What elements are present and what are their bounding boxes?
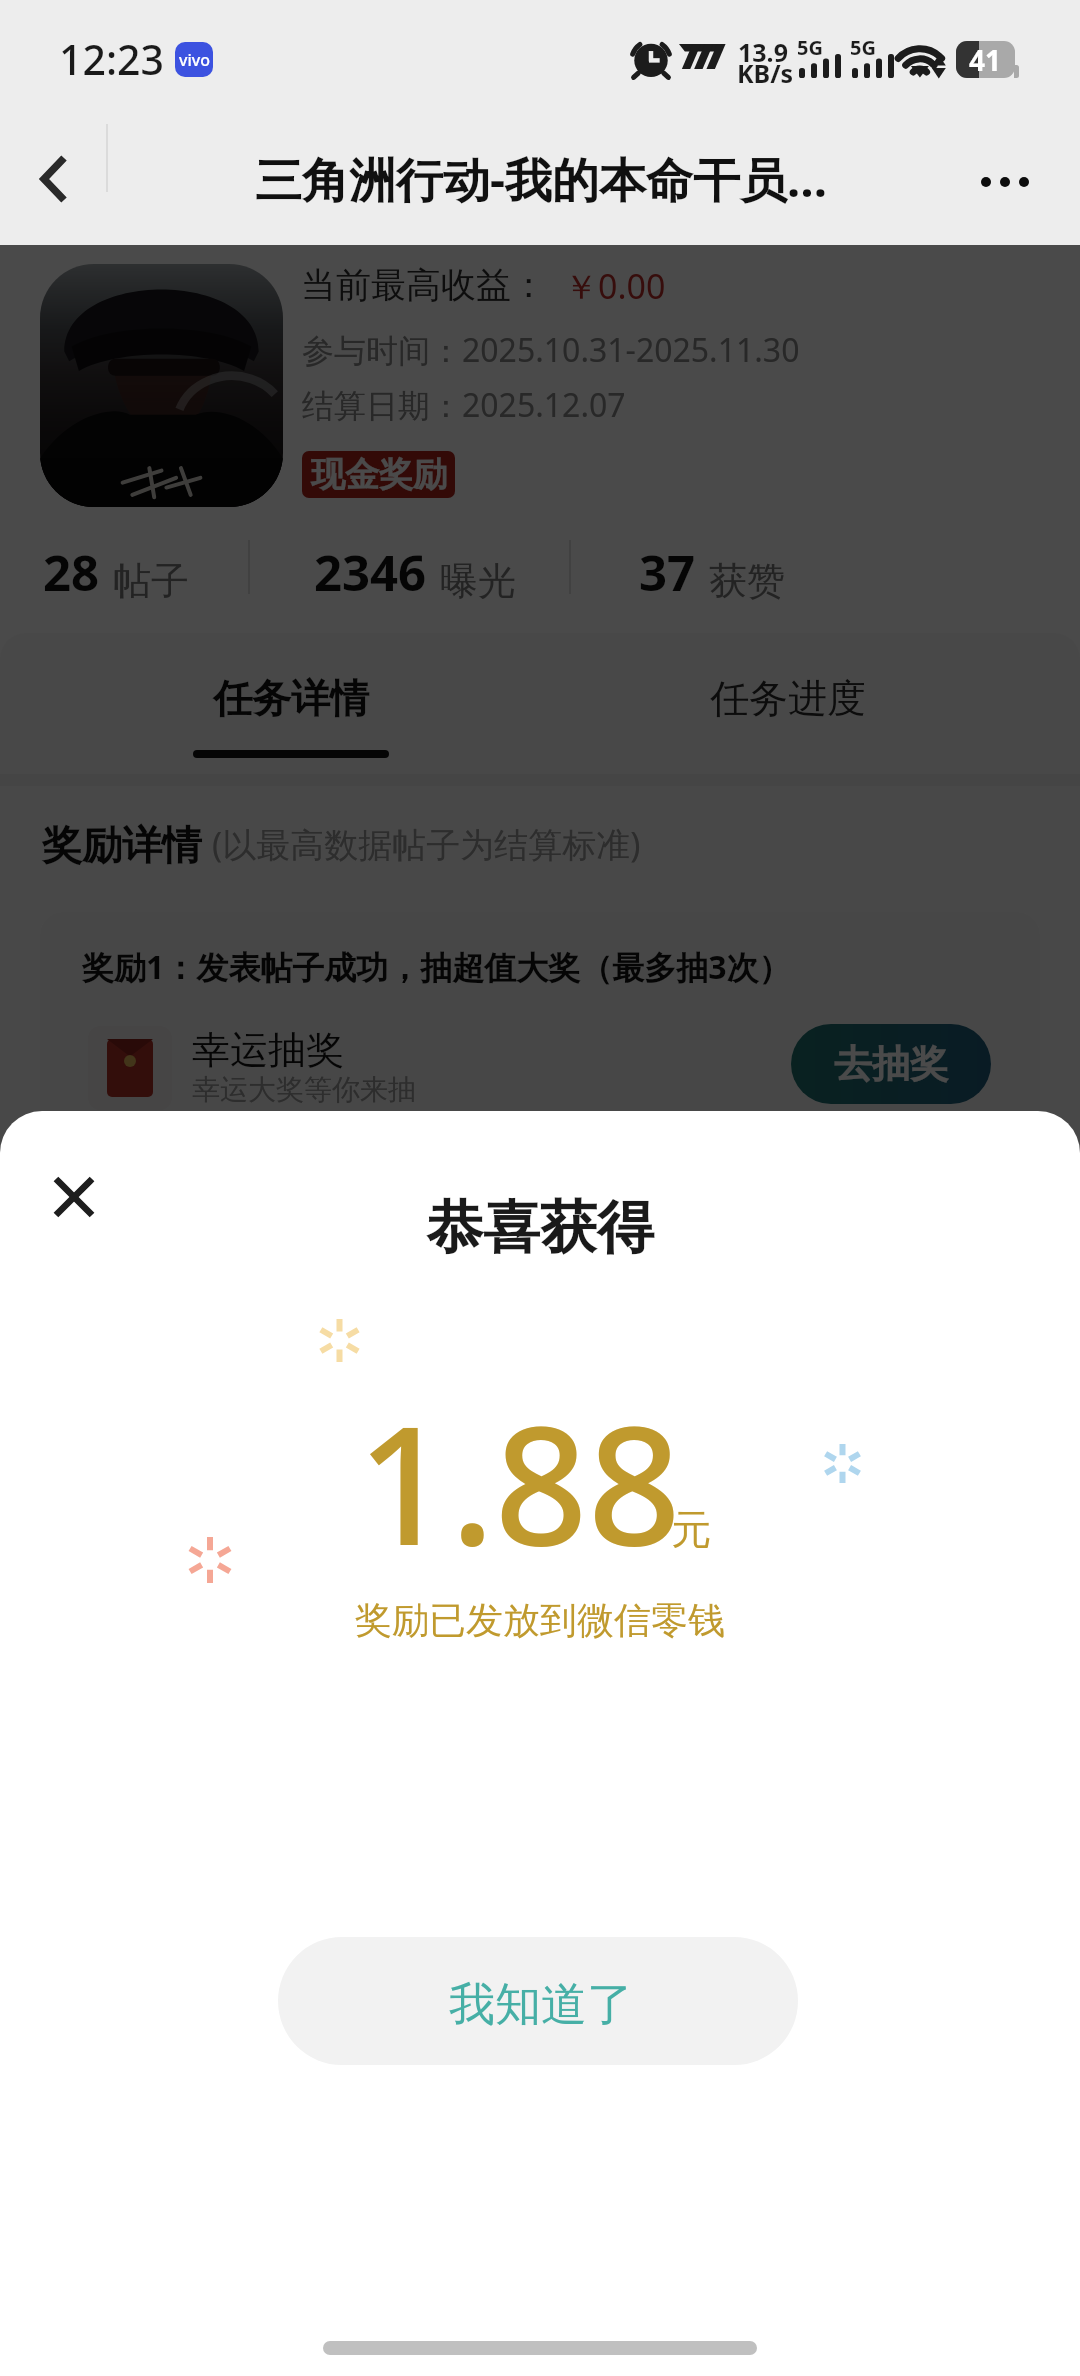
staticText: (以最高数据帖子为结算标准) bbox=[212, 821, 641, 867]
staticText: 奖励1：发表帖子成功，抽超值大奖（最多抽3次） bbox=[82, 945, 791, 989]
staticText: 现金奖励 bbox=[311, 453, 447, 496]
staticText: 当前最高收益： bbox=[301, 263, 546, 307]
staticText: ￥0.00 bbox=[564, 263, 666, 309]
staticText: 28 bbox=[43, 539, 100, 606]
staticText: 5G bbox=[850, 34, 876, 61]
button[interactable]: 我知道了 bbox=[278, 1937, 798, 2065]
staticText: 12:23 bbox=[59, 31, 164, 87]
staticText: 13.9 bbox=[738, 35, 788, 69]
staticText: 37 bbox=[639, 539, 696, 606]
button[interactable]: Back bbox=[0, 112, 106, 245]
staticText: 三角洲行动-我的本命干员… bbox=[255, 147, 828, 211]
staticText: 恭喜获得 bbox=[426, 1192, 654, 1264]
staticText: 元 bbox=[671, 1504, 711, 1554]
staticText: 参与时间：2025.10.31-2025.11.30 bbox=[302, 328, 800, 372]
staticText: 我知道了 bbox=[449, 1976, 633, 2034]
button[interactable]: More options bbox=[950, 112, 1080, 245]
staticText: 任务进度 bbox=[710, 674, 866, 723]
staticText: 奖励详情 bbox=[42, 820, 202, 870]
staticText: 幸运大奖等你来抽 bbox=[192, 1072, 416, 1107]
staticText: 41 bbox=[969, 41, 1002, 78]
staticText: 奖励已发放到微信零钱 bbox=[355, 1597, 725, 1644]
staticText: 结算日期：2025.12.07 bbox=[302, 383, 626, 427]
staticText: KB/s bbox=[737, 56, 794, 90]
staticText: 获赞 bbox=[709, 557, 785, 605]
staticText: 1.88 bbox=[357, 1371, 682, 1593]
staticText: 2346 bbox=[314, 539, 427, 606]
staticText: 去抽奖 bbox=[834, 1040, 948, 1088]
staticText: 帖子 bbox=[113, 557, 189, 605]
staticText: vivo bbox=[179, 49, 210, 71]
staticText: 幸运抽奖 bbox=[192, 1026, 344, 1074]
staticText: 5G bbox=[797, 34, 823, 61]
staticText: 任务详情 bbox=[213, 674, 369, 723]
staticText: 曝光 bbox=[440, 557, 516, 605]
button[interactable]: Close bbox=[30, 1153, 118, 1241]
